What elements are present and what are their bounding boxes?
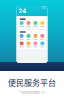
staticText: 便民服务平台 [8,76,56,88]
button[interactable]: Service [25,21,32,27]
button[interactable]: Service [39,21,46,27]
button[interactable]: Service [32,21,39,27]
button[interactable]: Service [18,34,25,40]
button[interactable]: Service [25,34,32,40]
button[interactable]: Service [32,34,39,40]
staticText: 24 [18,6,26,15]
button[interactable]: Service [39,41,46,47]
button[interactable]: Service [18,21,25,27]
button[interactable]: Service [18,41,25,47]
button[interactable]: Service [32,41,39,47]
staticText: 一站式综合服务门户 [18,89,45,94]
button[interactable]: Service [39,34,46,40]
button[interactable]: Service [25,41,32,47]
